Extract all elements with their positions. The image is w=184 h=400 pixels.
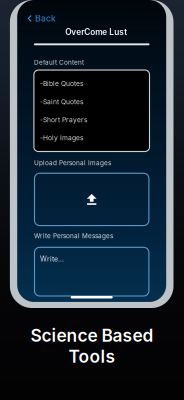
staticText: Write...	[40, 255, 64, 263]
staticText: Upload Personal Images	[34, 159, 111, 167]
button[interactable]: Write...	[34, 247, 149, 296]
button[interactable]: Back	[17, 0, 64, 25]
staticText: Back	[35, 13, 56, 24]
button[interactable]: Upload personal images	[34, 173, 149, 226]
staticText: -Short Prayers	[40, 116, 88, 124]
staticText: Default Content	[34, 58, 84, 66]
staticText: Science Based	[30, 325, 153, 346]
staticText: OverCome Lust	[65, 27, 127, 37]
staticText: -Saint Quotes	[40, 98, 84, 106]
staticText: -Bible Quotes	[40, 80, 84, 88]
staticText: Write Personal Messages	[34, 232, 113, 240]
staticText: -Holy Images	[40, 134, 84, 142]
staticText: Tools	[68, 346, 115, 367]
